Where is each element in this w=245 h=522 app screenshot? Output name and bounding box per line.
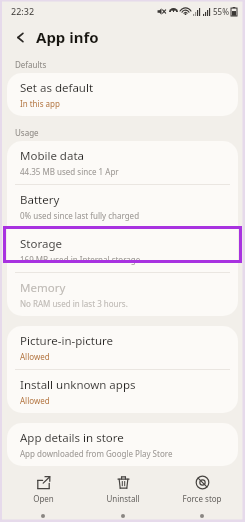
button[interactable]: Picture-in-picture <box>7 326 238 369</box>
staticText: App downloaded from Google Play Store <box>20 448 173 459</box>
button[interactable]: Memory <box>7 273 238 316</box>
staticText: 44.35 MB used since 1 Apr <box>20 166 119 177</box>
button[interactable]: Install unknown apps <box>7 370 238 413</box>
staticText: Allowed <box>20 395 50 406</box>
button[interactable]: Battery <box>7 185 238 228</box>
button[interactable]: Set as default <box>7 73 238 116</box>
button[interactable]: Back <box>11 28 30 47</box>
staticText: Install unknown apps <box>20 377 136 393</box>
staticText: Set as default <box>20 80 94 96</box>
staticText: App details in store <box>20 430 124 446</box>
staticText: Memory <box>20 280 66 296</box>
staticText: Open <box>33 493 54 504</box>
staticText: No RAM used in last 3 hours. <box>20 298 128 309</box>
staticText: Mobile data <box>20 148 84 164</box>
button[interactable]: Storage <box>7 229 238 272</box>
staticText: 169 MB used in Internal storage <box>20 254 141 265</box>
staticText: App info <box>36 27 99 47</box>
staticText: Usage <box>15 127 39 138</box>
button[interactable]: Uninstall <box>87 472 159 507</box>
staticText: Picture-in-picture <box>20 333 114 349</box>
button[interactable]: Force stop <box>166 472 238 507</box>
staticText: 22:32 <box>11 5 35 17</box>
staticText: Defaults <box>15 59 47 70</box>
staticText: In this app <box>20 98 60 109</box>
staticText: Allowed <box>20 351 50 362</box>
staticText: Storage <box>20 236 62 252</box>
button[interactable]: App details in store <box>7 423 238 466</box>
staticText: Battery <box>20 192 60 208</box>
button[interactable]: Open <box>7 472 79 507</box>
staticText: 0% used since last fully charged <box>20 210 140 221</box>
staticText: Force stop <box>182 493 222 504</box>
button[interactable]: Mobile data <box>7 141 238 184</box>
staticText: 55% <box>213 6 229 17</box>
staticText: Uninstall <box>106 493 140 504</box>
